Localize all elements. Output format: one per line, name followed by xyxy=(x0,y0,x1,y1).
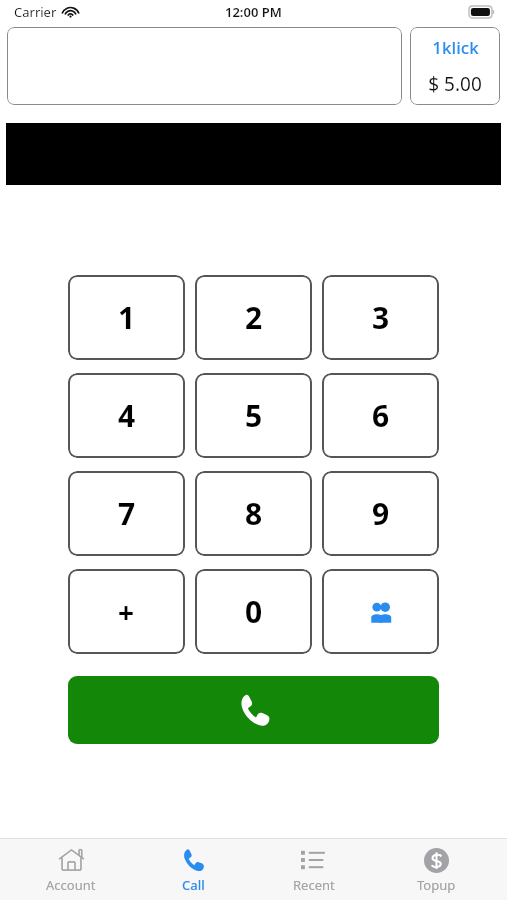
staticText: 12:00 PM xyxy=(225,3,282,21)
button[interactable]: 5 xyxy=(195,373,312,458)
staticText: Account xyxy=(46,876,96,894)
button[interactable]: 6 xyxy=(322,373,439,458)
staticText: Call xyxy=(182,876,205,894)
button[interactable]: Recent xyxy=(264,841,364,899)
staticText: + xyxy=(118,593,135,631)
button[interactable]: Topup xyxy=(386,841,486,899)
button[interactable]: 1klick xyxy=(410,27,500,105)
button[interactable]: 8 xyxy=(195,471,312,556)
staticText: 1klick xyxy=(432,36,479,59)
button[interactable]: Account xyxy=(21,841,121,899)
staticText: 4 xyxy=(118,395,136,436)
button[interactable]: Call xyxy=(68,676,439,744)
staticText: 1 xyxy=(118,297,136,338)
staticText: 0 xyxy=(245,591,263,632)
button[interactable] xyxy=(7,27,402,105)
staticText: 2 xyxy=(245,297,263,338)
button[interactable]: 7 xyxy=(68,471,185,556)
button[interactable]: 1 xyxy=(68,275,185,360)
button[interactable]: Contacts xyxy=(322,569,439,654)
button[interactable]: 3 xyxy=(322,275,439,360)
button[interactable]: 2 xyxy=(195,275,312,360)
staticText: Recent xyxy=(293,876,335,894)
button[interactable]: 9 xyxy=(322,471,439,556)
staticText: Topup xyxy=(417,876,456,894)
staticText: 9 xyxy=(372,493,390,534)
staticText: 8 xyxy=(245,493,263,534)
staticText: 6 xyxy=(372,395,390,436)
button[interactable]: Call xyxy=(143,841,243,899)
staticText: Carrier xyxy=(14,3,57,21)
button[interactable]: 4 xyxy=(68,373,185,458)
button[interactable]: 0 xyxy=(195,569,312,654)
staticText: 7 xyxy=(118,493,136,534)
staticText: $ 5.00 xyxy=(428,71,482,97)
staticText: 5 xyxy=(245,395,263,436)
button[interactable]: + xyxy=(68,569,185,654)
staticText: 3 xyxy=(372,297,390,338)
